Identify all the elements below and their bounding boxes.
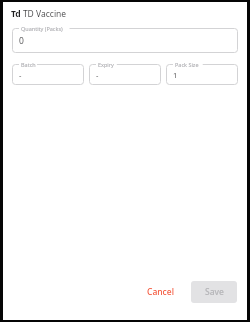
button[interactable]: Batch	[12, 64, 84, 85]
staticText: Save	[205, 286, 224, 298]
staticText: 1	[173, 70, 178, 80]
staticText: Td TD Vaccine	[11, 8, 67, 20]
button[interactable]: Expiry	[89, 64, 161, 85]
staticText: 0	[19, 35, 24, 47]
staticText: Pack Size	[175, 61, 199, 68]
button[interactable]: Quantity (Packs)	[12, 28, 238, 53]
staticText: Quantity (Packs)	[21, 25, 63, 32]
staticText: -	[19, 70, 22, 80]
staticText: -	[96, 70, 99, 80]
staticText: Batch	[21, 61, 36, 68]
button[interactable]: Pack Size	[166, 64, 238, 85]
staticText: Expiry	[98, 61, 114, 68]
button[interactable]: Save	[191, 281, 237, 303]
staticText: Cancel	[147, 286, 174, 298]
button[interactable]: Cancel	[138, 280, 183, 304]
